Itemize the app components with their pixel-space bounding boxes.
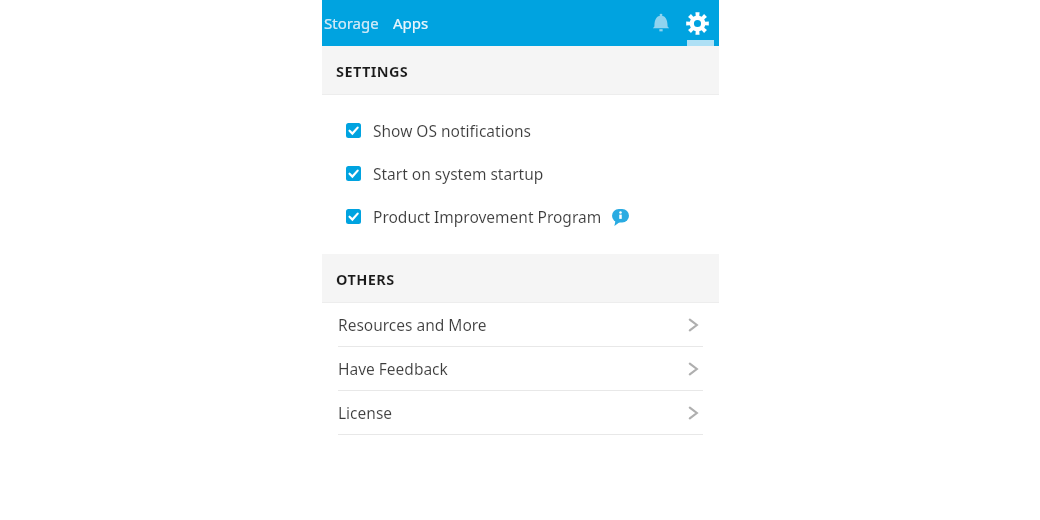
staticText: Have Feedback: [338, 358, 448, 379]
staticText: Start on system startup: [373, 163, 544, 184]
button[interactable]: Resources and More: [322, 303, 719, 346]
button[interactable]: License: [322, 391, 719, 434]
staticText: Product Improvement Program: [373, 206, 602, 227]
button[interactable]: Show OS notifications: [322, 109, 719, 152]
staticText: SETTINGS: [336, 61, 409, 81]
button[interactable]: Settings: [681, 7, 713, 39]
button[interactable]: Start on system startup: [322, 152, 719, 195]
staticText: Apps: [393, 13, 429, 33]
button[interactable]: Notifications: [645, 7, 677, 39]
staticText: OTHERS: [336, 269, 395, 289]
button[interactable]: Have Feedback: [322, 347, 719, 390]
staticText: Show OS notifications: [373, 120, 532, 141]
button[interactable]: Apps: [387, 3, 435, 43]
button[interactable]: Information: [611, 208, 629, 226]
staticText: Resources and More: [338, 314, 487, 335]
button[interactable]: Storage: [322, 3, 387, 43]
button[interactable]: Product Improvement Program: [322, 195, 719, 238]
staticText: Storage: [324, 13, 379, 33]
staticText: License: [338, 402, 393, 423]
